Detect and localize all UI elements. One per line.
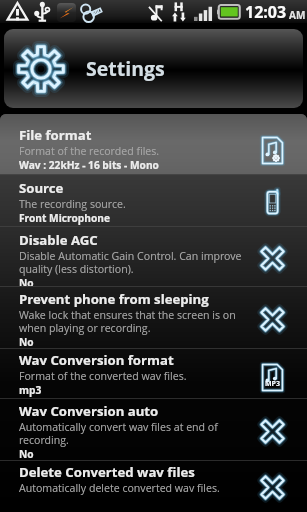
staticText: mp3 <box>19 383 42 397</box>
button[interactable]: Delete Converted wav files <box>0 460 307 510</box>
staticText: File format <box>19 126 92 144</box>
staticText: Source <box>19 179 64 197</box>
staticText: No <box>19 335 34 348</box>
staticText: AM <box>289 8 306 22</box>
staticText: Disable Automatic Gain Control. Can impr… <box>19 249 249 276</box>
button[interactable]: Wav Conversion auto <box>0 398 307 460</box>
staticText: Format of the converted wav files. <box>19 369 187 383</box>
staticText: The recording source. <box>19 197 126 211</box>
staticText: Automatically delete converted wav files… <box>19 481 220 495</box>
staticText: Wav : 22kHz - 16 bits - Mono <box>19 158 159 172</box>
staticText: Settings <box>86 55 165 82</box>
button[interactable]: Wav Conversion format <box>0 348 307 398</box>
button[interactable]: Prevent phone from sleeping <box>0 286 307 348</box>
staticText: Format of the recorded files. <box>19 144 160 158</box>
staticText: Automatically convert wav files at end o… <box>19 420 249 447</box>
staticText: 12:03 <box>245 1 287 23</box>
staticText: Disable AGC <box>19 231 98 249</box>
staticText: No <box>19 276 34 286</box>
staticText: No <box>19 447 34 460</box>
staticText: Front Microphone <box>19 211 110 225</box>
staticText: Prevent phone from sleeping <box>19 290 209 308</box>
staticText: Wav Conversion format <box>19 351 174 369</box>
button[interactable]: File format <box>0 114 307 174</box>
staticText: Wake lock that ensures that the screen i… <box>19 308 249 335</box>
staticText: Delete Converted wav files <box>19 463 195 481</box>
staticText: MP3 <box>265 379 280 389</box>
button[interactable]: Source <box>0 174 307 226</box>
button[interactable]: Disable AGC <box>0 226 307 286</box>
staticText: Wav Conversion auto <box>19 402 159 420</box>
